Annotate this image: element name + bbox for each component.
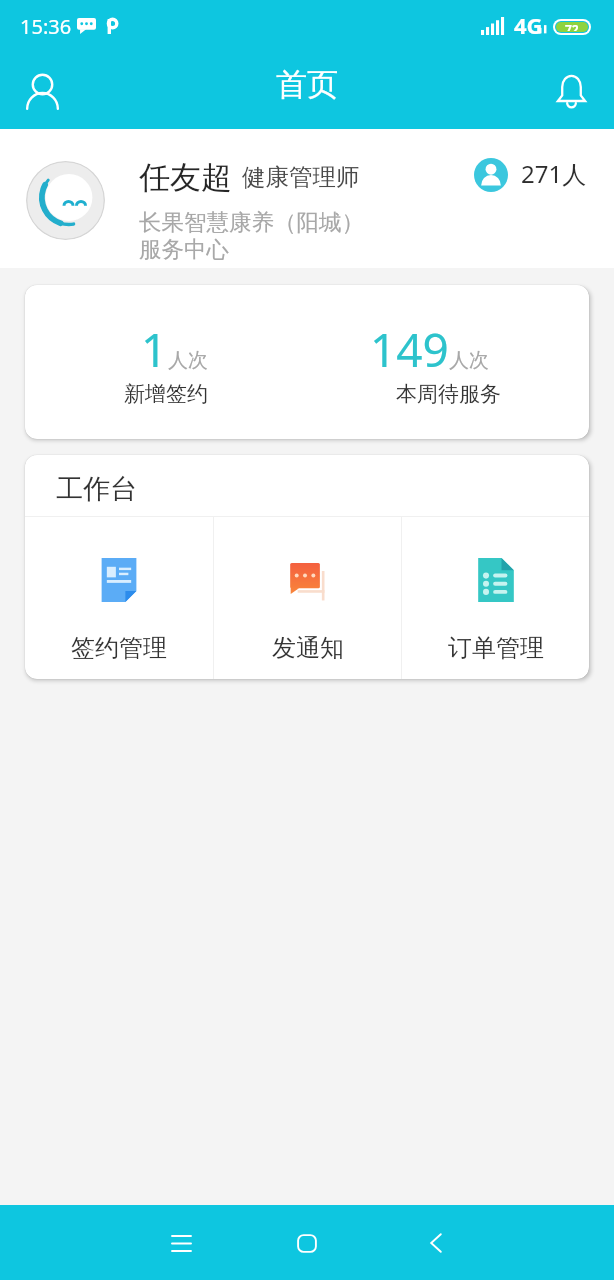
button[interactable]: Notifications xyxy=(543,62,599,118)
staticText: 本周待服务 xyxy=(396,381,501,407)
button[interactable]: 发通知 xyxy=(214,517,401,679)
staticText: 1 xyxy=(141,318,168,381)
button[interactable]: Back xyxy=(407,1223,465,1263)
staticText: 发通知 xyxy=(272,633,344,663)
staticText: 订单管理 xyxy=(448,633,544,663)
button[interactable]: 签约管理 xyxy=(25,517,213,679)
staticText: 任友超 xyxy=(139,158,232,197)
staticText: 签约管理 xyxy=(71,633,167,663)
button[interactable]: Home xyxy=(278,1223,336,1263)
button[interactable]: Recent apps xyxy=(152,1223,210,1263)
staticText: 4G xyxy=(514,10,543,40)
staticText: 72 xyxy=(565,22,579,31)
staticText: 人次 xyxy=(168,348,208,373)
button[interactable]: 1 xyxy=(25,285,307,439)
button[interactable]: 任友超 xyxy=(0,129,614,268)
staticText: 新增签约 xyxy=(124,381,208,407)
staticText: 首页 xyxy=(276,65,338,104)
staticText: 15:36 xyxy=(20,13,72,40)
staticText: 149 xyxy=(370,318,449,381)
button[interactable]: 149 xyxy=(307,285,589,439)
staticText: 长果智慧康养（阳城） 服务中心 xyxy=(139,208,364,264)
button[interactable]: Profile xyxy=(14,64,70,120)
staticText: 健康管理师 xyxy=(242,162,360,192)
staticText: 人次 xyxy=(449,348,489,373)
button[interactable]: 订单管理 xyxy=(402,517,589,679)
staticText: 271人 xyxy=(521,157,587,190)
staticText: 工作台 xyxy=(56,472,137,506)
